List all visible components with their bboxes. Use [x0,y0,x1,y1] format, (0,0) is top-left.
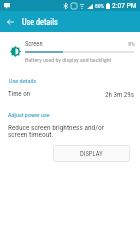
staticText: 8% [110,40,135,47]
button[interactable]: DISPLAY [53,145,130,162]
staticText: Time on [8,90,30,98]
button[interactable]: Screen [0,34,140,66]
staticText: Reduce screen brightness and/or screen t… [8,123,108,138]
staticText: DISPLAY [80,150,103,158]
staticText: Use details [9,77,37,84]
staticText: 80% [95,3,105,10]
staticText: 2:07 PM [112,1,137,10]
staticText: Adjust power use [8,111,50,118]
staticText: Battery used by display and backlight [25,57,112,64]
staticText: Use details [22,17,58,27]
staticText: 2h 3m 29s [100,90,134,98]
button[interactable]: Time on [0,86,140,102]
button[interactable]: Back [2,13,19,30]
staticText: Screen [25,40,43,48]
